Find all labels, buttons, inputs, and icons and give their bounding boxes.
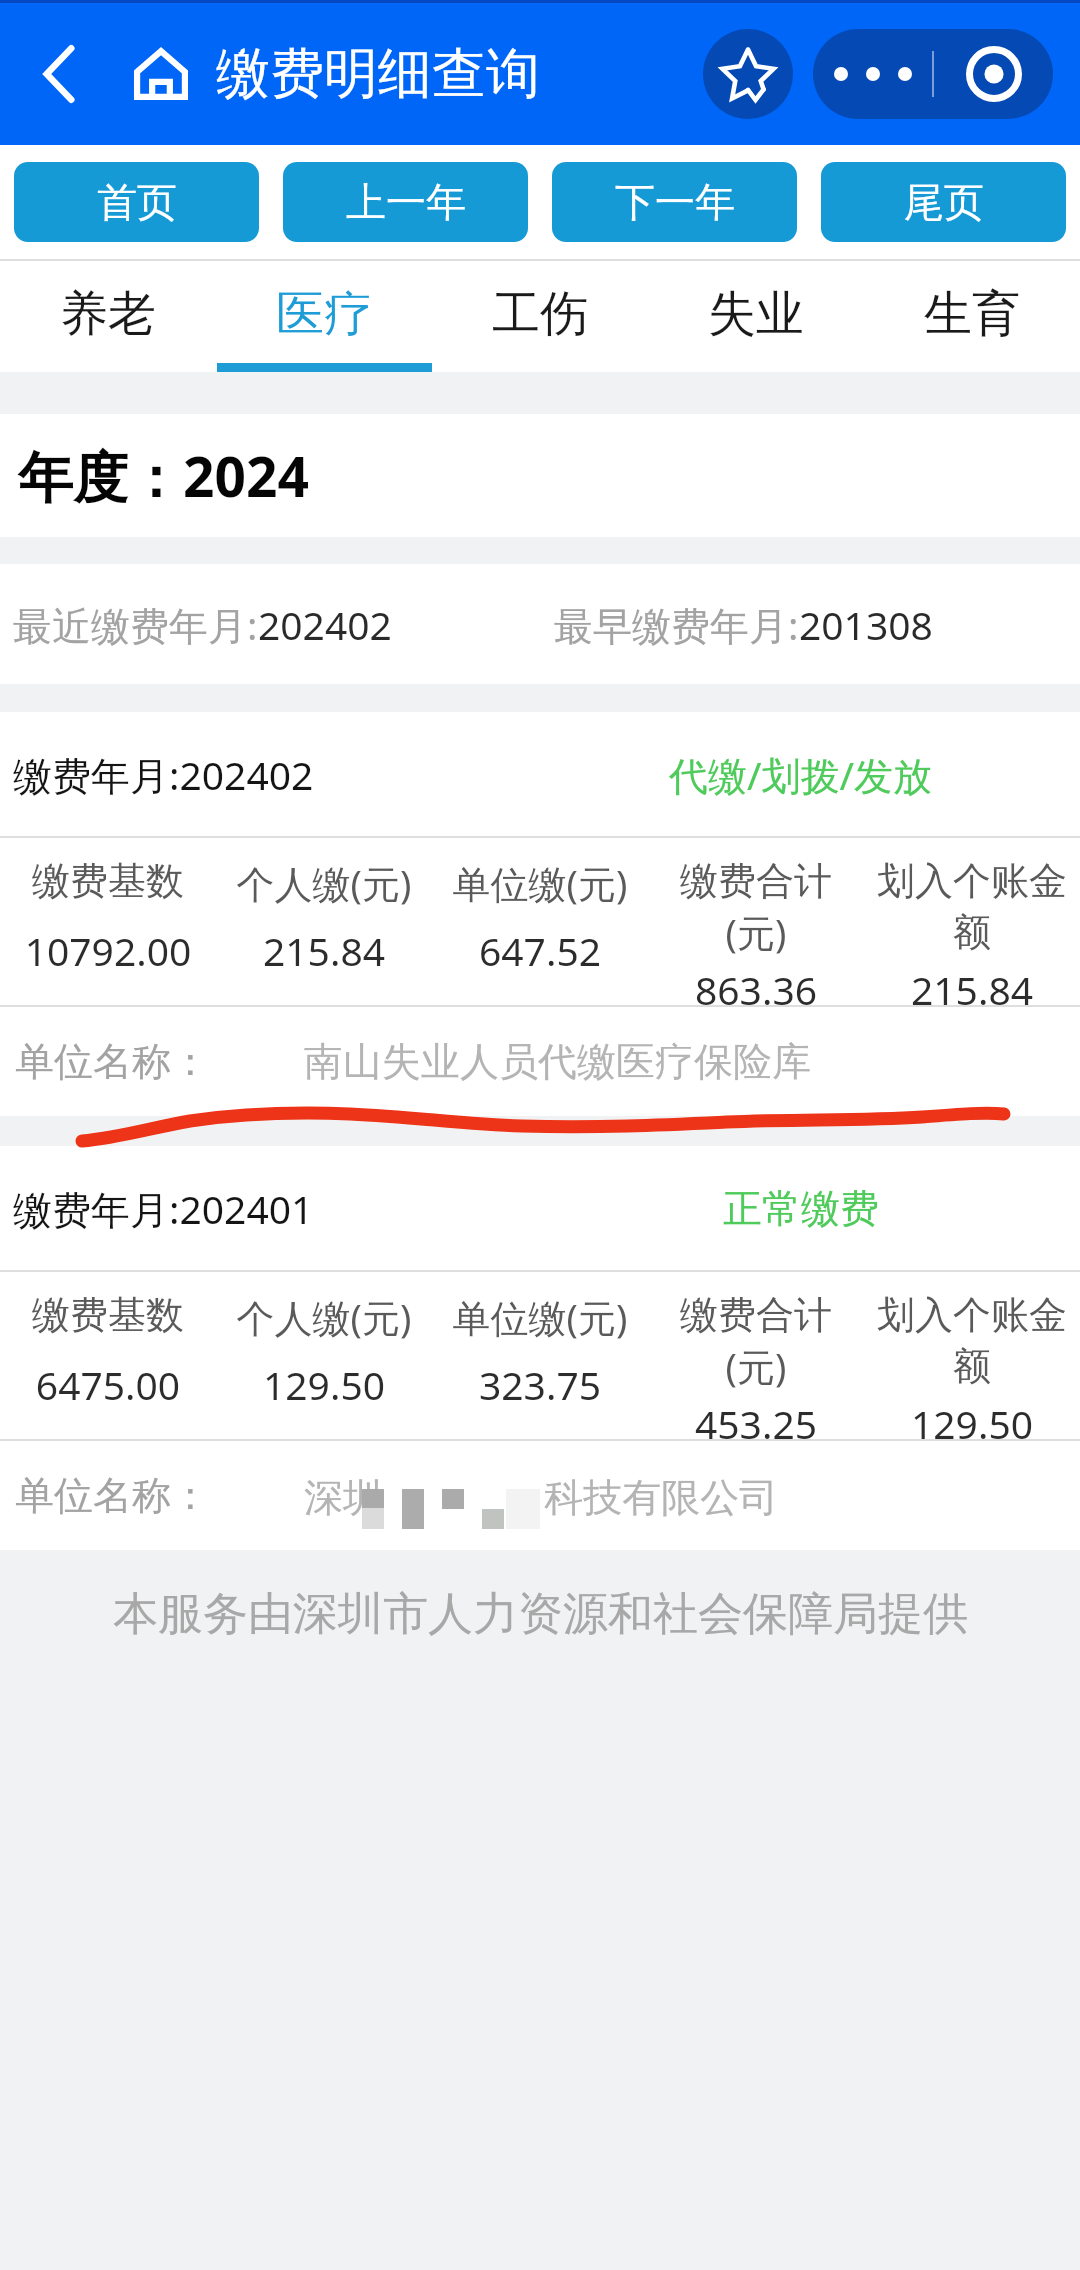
button[interactable]: 下一年 (552, 162, 797, 242)
staticText: 南山失业人员代缴医疗保险库 (304, 1037, 811, 1086)
staticText: 缴费合计 (元) (648, 857, 864, 958)
staticText: 单位缴(元) (432, 1291, 648, 1343)
button[interactable]: 失业 (648, 261, 864, 372)
staticText: 202402 (258, 598, 392, 651)
staticText: 6475.00 (0, 1358, 216, 1411)
staticText: 上一年 (346, 177, 466, 227)
staticText: 最早缴费年月: (554, 598, 799, 651)
staticText: 缴费年月:202402 (13, 748, 314, 801)
staticText: 尾页 (904, 177, 984, 227)
staticText: 10792.00 (0, 924, 216, 977)
staticText: 本服务由深圳市人力资源和社会保障局提供 (113, 1586, 968, 1643)
staticText: 单位名称： (15, 1471, 210, 1520)
staticText: 最近缴费年月: (13, 598, 258, 651)
staticText: 代缴/划拨/发放 (669, 748, 933, 801)
staticText: 下一年 (615, 177, 735, 227)
button[interactable]: Home (123, 36, 199, 112)
button[interactable]: 缴费年月:202401 (0, 1146, 1080, 1550)
staticText: 正常缴费 (723, 1184, 879, 1233)
button[interactable]: 工伤 (432, 261, 648, 372)
staticText: 划入个账金 额 (864, 1291, 1080, 1390)
staticText: 工伤 (492, 284, 588, 344)
staticText: 453.25 (648, 1397, 864, 1450)
staticText: 年度：2024 (18, 438, 309, 513)
staticText: 647.52 (432, 924, 648, 977)
staticText: 缴费合计 (元) (648, 1291, 864, 1392)
button[interactable]: 生育 (864, 261, 1080, 372)
staticText: 划入个账金 额 (864, 857, 1080, 956)
staticText: 129.50 (864, 1397, 1080, 1450)
button[interactable]: 养老 (0, 261, 216, 372)
button[interactable]: 尾页 (821, 162, 1066, 242)
staticText: 生育 (924, 284, 1020, 344)
button[interactable]: Add to favourites (703, 29, 793, 119)
staticText: 缴费基数 (0, 857, 216, 905)
button[interactable]: 医疗 (216, 261, 432, 372)
staticText: 863.36 (648, 963, 864, 1016)
staticText: 201308 (799, 598, 933, 651)
button[interactable]: 缴费年月:202402 (0, 712, 1080, 1116)
staticText: 养老 (60, 284, 156, 344)
staticText: 个人缴(元) (216, 857, 432, 909)
staticText: 129.50 (216, 1358, 432, 1411)
button[interactable]: 首页 (14, 162, 259, 242)
staticText: 首页 (97, 177, 177, 227)
staticText: 医疗 (276, 284, 372, 344)
staticText: 215.84 (216, 924, 432, 977)
button[interactable]: Back (21, 36, 97, 112)
staticText: 个人缴(元) (216, 1291, 432, 1343)
staticText: 深圳 科技有限公司 (304, 1469, 779, 1522)
button[interactable]: 上一年 (283, 162, 528, 242)
button[interactable]: More options (813, 29, 932, 119)
staticText: 失业 (708, 284, 804, 344)
staticText: 单位名称： (15, 1037, 210, 1086)
staticText: 缴费基数 (0, 1291, 216, 1339)
staticText: 215.84 (864, 963, 1080, 1016)
staticText: 缴费明细查询 (216, 40, 540, 108)
staticText: 323.75 (432, 1358, 648, 1411)
staticText: 单位缴(元) (432, 857, 648, 909)
staticText: 缴费年月:202401 (13, 1182, 314, 1235)
button[interactable]: Close mini program (934, 29, 1053, 119)
